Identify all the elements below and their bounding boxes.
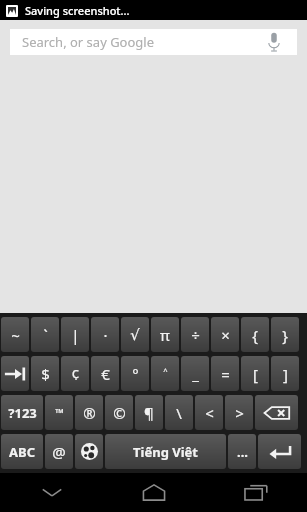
staticText: ÷ [191,325,200,345]
button[interactable]: | [61,317,89,352]
button[interactable]: [ [241,356,269,391]
staticText: ?123 [8,404,37,422]
staticText: € [101,364,110,384]
staticText: π [160,325,170,345]
button[interactable]: Delete [255,395,298,430]
button[interactable]: } [271,317,299,352]
staticText: √ [130,326,140,343]
staticText: Search, or say Google [22,33,263,51]
button[interactable]: · [91,317,119,352]
button[interactable]: $ [31,356,59,391]
button[interactable]: _ [181,356,209,391]
button[interactable]: Home [103,473,205,512]
staticText: @ [52,442,66,462]
staticText: · [103,325,108,345]
button[interactable]: ° [121,356,149,391]
button[interactable]: ¢ [61,356,89,391]
button[interactable]: Voice search [263,31,285,53]
button[interactable]: Recent apps [205,473,307,512]
staticText: ™ [55,405,64,420]
button[interactable]: ~ [1,317,29,352]
staticText: | [71,325,80,345]
button[interactable]: \ [165,395,193,430]
button[interactable]: ¶ [135,395,163,430]
staticText: ... [237,443,248,461]
staticText: ] [283,364,288,384]
button[interactable]: Search, or say Google [10,29,297,55]
button[interactable]: € [91,356,119,391]
button[interactable]: @ [45,434,73,469]
button[interactable]: Back [0,473,103,512]
button[interactable]: = [211,356,239,391]
button[interactable]: Tiếng Việt [105,434,226,469]
button[interactable]: ?123 [1,395,43,430]
button[interactable]: > [225,395,253,430]
button[interactable]: ` [31,317,59,352]
button[interactable]: Enter [258,434,301,469]
staticText: ˄ [163,364,168,384]
staticText: $ [41,364,50,384]
button[interactable]: { [241,317,269,352]
button[interactable]: Tab [1,356,29,391]
button[interactable]: ... [228,434,256,469]
staticText: ¶ [144,403,154,423]
staticText: © [113,403,126,423]
staticText: ° [132,364,139,384]
button[interactable]: © [105,395,133,430]
button[interactable]: ] [271,356,299,391]
staticText: ® [83,403,96,423]
button[interactable]: ® [75,395,103,430]
button[interactable]: √ [121,317,149,352]
button[interactable]: π [151,317,179,352]
staticText: _ [192,364,199,384]
button[interactable]: ™ [45,395,73,430]
staticText: = [221,364,230,384]
staticText: ¢ [71,364,80,384]
staticText: \ [176,403,182,423]
staticText: ` [43,325,48,345]
button[interactable]: < [195,395,223,430]
staticText: × [221,325,230,345]
staticText: < [205,403,214,423]
staticText: > [235,403,244,423]
button[interactable]: × [211,317,239,352]
button[interactable]: ˄ [151,356,179,391]
staticText: ABC [9,443,35,461]
staticText: Tiếng Việt [133,443,198,461]
button[interactable]: Change language [75,434,103,469]
staticText: { [252,325,258,345]
staticText: [ [253,364,258,384]
staticText: Saving screenshot... [25,3,130,18]
staticText: } [282,325,288,345]
button[interactable]: ÷ [181,317,209,352]
button[interactable]: ABC [1,434,43,469]
staticText: ~ [11,325,20,345]
